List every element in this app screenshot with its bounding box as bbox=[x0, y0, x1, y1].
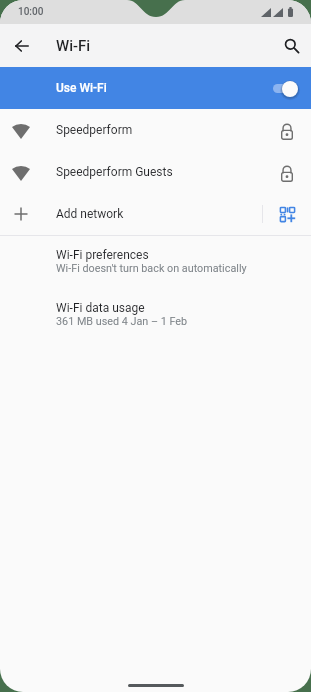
staticText: Speedperform bbox=[56, 123, 133, 137]
button[interactable]: Scan QR code to add network bbox=[263, 193, 311, 235]
staticText: Wi-Fi preferences bbox=[56, 248, 149, 262]
button[interactable]: Speedperform bbox=[0, 109, 311, 151]
button[interactable]: Search bbox=[276, 30, 308, 62]
staticText: Wi-Fi bbox=[56, 37, 91, 55]
button[interactable]: Wi-Fi data usage bbox=[0, 301, 311, 328]
button[interactable]: Use Wi-Fi bbox=[0, 67, 311, 109]
staticText: 10:00 bbox=[18, 6, 44, 18]
staticText: Speedperform Guests bbox=[56, 165, 173, 179]
button[interactable]: Wi-Fi preferences bbox=[0, 248, 311, 275]
staticText: 361 MB used 4 Jan – 1 Feb bbox=[56, 315, 188, 328]
staticText: Wi-Fi data usage bbox=[56, 301, 145, 315]
staticText: Wi-Fi doesn't turn back on automatically bbox=[56, 262, 247, 275]
button[interactable]: Add network bbox=[0, 193, 311, 235]
button[interactable]: Back bbox=[6, 30, 38, 62]
button[interactable]: Speedperform Guests bbox=[0, 151, 311, 193]
staticText: Use Wi-Fi bbox=[56, 81, 107, 95]
staticText: Add network bbox=[56, 207, 124, 221]
